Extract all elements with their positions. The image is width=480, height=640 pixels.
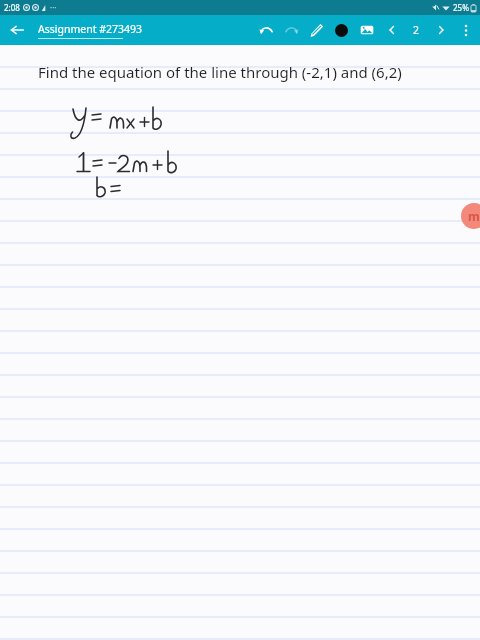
staticText: ··· xyxy=(50,2,57,13)
button[interactable]: Undo xyxy=(254,16,279,44)
button[interactable]: Back xyxy=(5,18,29,42)
button[interactable]: Redo xyxy=(279,16,304,44)
button[interactable]: Pen xyxy=(304,16,329,44)
staticText: m xyxy=(468,208,480,224)
staticText: 2:08 xyxy=(4,2,20,13)
button[interactable]: Assistant xyxy=(461,203,480,229)
button[interactable]: Assignment #273493 xyxy=(38,22,142,39)
button[interactable]: More options xyxy=(453,16,478,44)
button[interactable]: 2 xyxy=(404,16,428,44)
button[interactable]: Ink colour xyxy=(329,16,354,44)
staticText: 2 xyxy=(413,23,420,37)
button[interactable]: Next page xyxy=(428,16,453,44)
button[interactable]: Previous page xyxy=(379,16,404,44)
staticText: 25% xyxy=(453,2,469,13)
staticText: Find the equation of the line through (-… xyxy=(38,62,402,82)
staticText: Assignment #273493 xyxy=(38,22,142,36)
button[interactable]: Insert image xyxy=(354,16,379,44)
